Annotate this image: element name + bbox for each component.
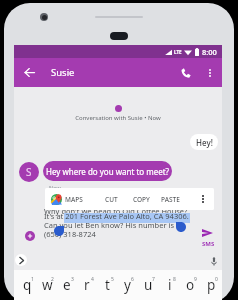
staticText: 0 (215, 276, 218, 283)
button[interactable]: 8 (159, 270, 180, 300)
button[interactable]: 3 (57, 270, 77, 300)
staticText: q (23, 276, 32, 294)
staticText: Why don't we head to Old Coffee House? (44, 206, 188, 216)
staticText: CUT (105, 195, 118, 204)
staticText: MAPS (65, 195, 83, 204)
staticText: 4 (91, 276, 94, 283)
staticText: SMS (202, 240, 215, 248)
staticText: o (186, 276, 195, 294)
button[interactable]: 9 (180, 270, 201, 300)
staticText: 8:00 (202, 47, 217, 57)
staticText: w (42, 276, 53, 294)
staticText: LTE (174, 49, 182, 55)
button[interactable]: PASTE (153, 188, 188, 210)
staticText: PASTE (161, 195, 180, 204)
button[interactable]: Add attachment (25, 231, 35, 241)
button[interactable]: More actions (191, 188, 214, 210)
button[interactable]: 4 (77, 270, 97, 300)
staticText: 9 (194, 276, 197, 283)
button[interactable]: 7 (138, 270, 159, 300)
staticText: p (207, 276, 216, 294)
staticText: Conversation with Susie • Now (14, 114, 222, 122)
staticText: Susie (51, 66, 75, 79)
staticText: e (63, 276, 71, 294)
staticText: 1 (31, 276, 34, 283)
staticText: t (105, 276, 110, 294)
staticText: Hey where do you want to meet? (46, 166, 170, 177)
button[interactable]: Call (176, 63, 196, 83)
staticText: 3 (71, 276, 74, 283)
button[interactable]: Hey where do you want to meet? (43, 161, 172, 181)
button[interactable]: Hey! (190, 134, 218, 150)
staticText: i (168, 276, 172, 294)
staticText: 7 (152, 276, 155, 283)
staticText: Hey! (196, 137, 213, 148)
button[interactable]: Expand (15, 254, 27, 266)
button[interactable]: More options (201, 64, 219, 82)
button[interactable]: COPY (125, 188, 157, 210)
button[interactable]: Send SMS (202, 229, 213, 237)
staticText: u (144, 276, 153, 294)
button[interactable]: 2 (37, 270, 57, 300)
staticText: Now (49, 184, 61, 191)
button[interactable]: 0 (201, 270, 222, 300)
staticText: It's at 201 Forest Ave Palo Alto, CA 943… (44, 211, 189, 221)
button[interactable]: Voice input (208, 255, 220, 267)
button[interactable]: CUT (98, 188, 124, 210)
staticText: COPY (133, 195, 150, 204)
button[interactable]: 6 (117, 270, 138, 300)
button[interactable]: Back (19, 58, 40, 87)
staticText: Can you let Ben know? His number is (44, 220, 175, 230)
staticText: 5 (111, 276, 114, 283)
staticText: 6 (131, 276, 134, 283)
staticText: S (26, 165, 32, 179)
staticText: r (84, 276, 90, 294)
button[interactable]: 1 (17, 270, 37, 300)
button[interactable]: MAPS (48, 188, 89, 210)
staticText: 2 (51, 276, 54, 283)
staticText: y (124, 276, 131, 294)
staticText: (650) 318-8724 (44, 229, 96, 239)
staticText: 8 (173, 276, 176, 283)
button[interactable]: 5 (97, 270, 117, 300)
